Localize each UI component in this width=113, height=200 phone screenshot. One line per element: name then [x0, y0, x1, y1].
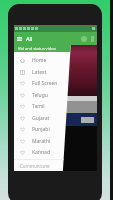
staticText: Tamil	[32, 103, 45, 110]
staticText: Communicate	[20, 163, 50, 169]
staticText: Kannad	[32, 149, 50, 156]
button[interactable]: Telugu	[14, 89, 72, 101]
button[interactable]: Full Screen	[14, 77, 72, 89]
staticText: All	[26, 35, 33, 42]
button[interactable]: Kannad	[14, 146, 72, 158]
staticText: Marathi	[32, 138, 51, 145]
staticText: Punjabi	[32, 126, 50, 133]
staticText: Telugu	[32, 92, 48, 99]
button[interactable]: Marathi	[14, 135, 72, 147]
staticText: Gujarat	[32, 115, 50, 122]
button[interactable]: Punjabi	[14, 123, 72, 135]
button[interactable]: Gujarat	[14, 112, 72, 124]
button[interactable]: Latest	[14, 66, 72, 78]
button[interactable]: Search	[81, 36, 87, 42]
staticText: Vid and status video download	[18, 46, 72, 51]
button[interactable]: Open navigation menu	[17, 36, 22, 41]
staticText: Full Screen	[32, 80, 58, 87]
staticText: Home	[32, 57, 47, 64]
button[interactable]: Home	[14, 54, 72, 66]
staticText: Latest	[32, 69, 47, 76]
button[interactable]: Tamil	[14, 100, 72, 112]
